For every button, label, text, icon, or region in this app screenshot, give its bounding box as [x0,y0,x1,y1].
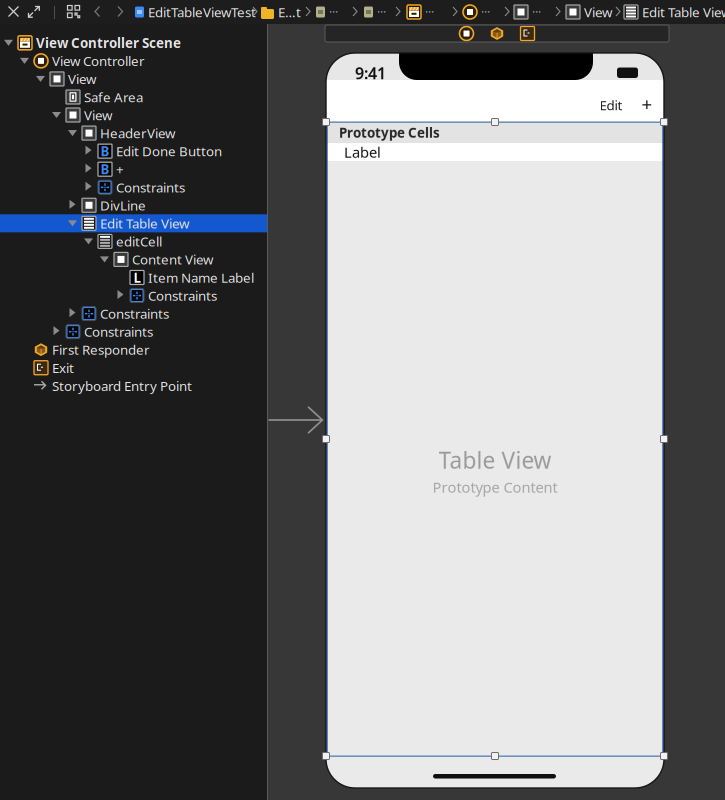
staticText: Edit Done Button [116,142,222,160]
button[interactable]: Storyboard Entry Point [0,377,267,395]
button[interactable]: HeaderView [0,124,267,142]
button[interactable]: editCell [0,232,267,250]
staticText: Constraints [116,178,185,196]
button[interactable]: Constraints [0,178,267,196]
button[interactable]: Content View [0,250,267,268]
staticText: Content View [132,251,213,268]
button[interactable]: ··· [514,1,541,23]
button[interactable]: B [0,142,267,160]
button[interactable]: Exit [520,26,534,40]
staticText: + [641,92,652,116]
button[interactable]: Show editor options [62,0,86,24]
button[interactable]: View Controller [0,52,267,70]
button[interactable]: View Controller [459,26,473,40]
button[interactable]: Constraints [0,286,267,305]
button[interactable]: Edit [591,91,631,119]
button[interactable]: First Responder [0,341,267,359]
staticText: Storyboard Entry Point [52,377,192,395]
button[interactable]: B [0,160,267,178]
button[interactable]: Close [3,1,24,22]
button[interactable]: Constraints [0,304,267,323]
button[interactable]: ··· [364,1,386,23]
button[interactable]: Safe Area [0,88,267,106]
button[interactable]: ··· [407,1,434,23]
staticText: ··· [481,4,490,20]
staticText: B [100,142,109,160]
staticText: editCell [116,232,162,250]
staticText: Safe Area [84,88,143,106]
button[interactable]: Back [88,0,107,24]
staticText: HeaderView [100,124,175,142]
button[interactable]: ··· [463,1,490,23]
staticText: Edit [599,96,622,114]
staticText: B [100,160,109,178]
staticText: View [84,106,112,124]
staticText: View Controller [52,52,145,70]
staticText: Constraints [148,287,217,304]
button[interactable]: DivLine [0,196,267,214]
staticText: Label [344,142,381,162]
staticText: Constraints [100,305,169,322]
button[interactable]: Expand [23,1,45,23]
button[interactable]: EditTableViewTest [135,1,256,23]
staticText: EditTableViewTest [148,3,256,21]
staticText: Exit [52,359,74,377]
staticText: Prototype Content [432,477,557,497]
button[interactable]: First Responder [490,26,504,40]
staticText: ··· [329,4,338,20]
staticText: First Responder [52,341,150,358]
button[interactable]: E…t [261,1,301,23]
staticText: ··· [425,4,434,20]
staticText: Edit Table View [642,3,725,21]
button[interactable]: View [566,1,612,23]
staticText: L [133,269,140,286]
staticText: DivLine [100,196,146,214]
staticText: View Controller Scene [36,34,181,52]
button[interactable]: Edit Table View [0,214,267,232]
staticText: Edit Table View [100,214,189,232]
button[interactable]: View [0,70,267,88]
button[interactable]: View Controller Scene [0,34,267,52]
staticText: 9:41 [355,62,386,84]
button[interactable]: Edit Table View [624,1,725,23]
staticText: Table View [438,445,551,475]
button[interactable]: Constraints [0,323,267,341]
staticText: View [584,3,612,21]
button[interactable]: Forward [111,0,130,24]
button[interactable]: ··· [316,1,338,23]
button[interactable]: + [634,90,660,118]
button[interactable]: View [0,106,267,124]
staticText: Constraints [84,323,153,340]
staticText: ··· [377,4,386,20]
button[interactable]: Exit [0,359,267,377]
staticText: + [116,160,124,178]
staticText: View [68,70,96,88]
staticText: Item Name Label [148,269,254,286]
staticText: Prototype Cells [339,124,440,141]
staticText: ··· [532,4,541,20]
staticText: E…t [278,3,301,21]
button[interactable]: L [0,268,267,286]
